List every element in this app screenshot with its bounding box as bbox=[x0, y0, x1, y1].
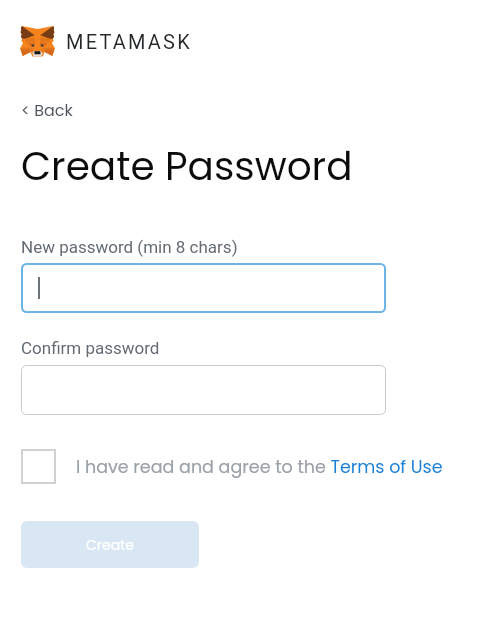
button[interactable]: < Back bbox=[21, 99, 73, 121]
staticText: I have read and agree to the Terms of Us… bbox=[76, 455, 443, 480]
button[interactable]: Create bbox=[21, 521, 199, 568]
staticText: Confirm password bbox=[21, 338, 160, 358]
staticText: METAMASK bbox=[66, 30, 192, 53]
staticText: Create bbox=[86, 535, 134, 555]
button[interactable] bbox=[21, 365, 386, 415]
button[interactable]: I have read and agree to the Terms of Us… bbox=[76, 455, 443, 480]
staticText: New password (min 8 chars) bbox=[21, 237, 238, 257]
button[interactable] bbox=[21, 263, 386, 313]
staticText: Create Password bbox=[21, 139, 353, 194]
button[interactable]: Agree to Terms of Use checkbox bbox=[21, 449, 56, 484]
staticText: < Back bbox=[21, 99, 73, 121]
